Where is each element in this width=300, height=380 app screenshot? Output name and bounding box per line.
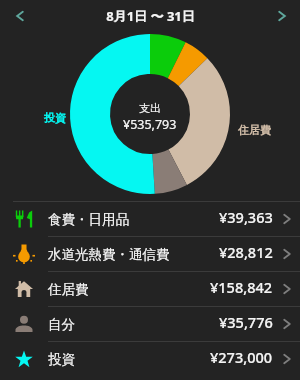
- button[interactable]: 水道光熱費・通信費: [0, 237, 300, 271]
- staticText: ¥35,776: [219, 312, 273, 332]
- button[interactable]: 住居費: [0, 272, 300, 306]
- staticText: ¥273,000: [210, 347, 273, 367]
- staticText: 食費・日用品: [48, 211, 129, 228]
- staticText: 住居費: [48, 281, 89, 298]
- button[interactable]: Next month: [264, 0, 300, 32]
- staticText: ¥28,812: [219, 242, 273, 262]
- button[interactable]: 投資: [0, 342, 300, 376]
- staticText: 支出: [139, 101, 161, 115]
- staticText: 8月1日 〜 31日: [106, 7, 195, 25]
- staticText: ¥39,363: [219, 207, 273, 227]
- staticText: 水道光熱費・通信費: [48, 246, 170, 263]
- staticText: 投資: [48, 351, 75, 368]
- staticText: ¥535,793: [123, 116, 177, 133]
- staticText: ¥158,842: [210, 277, 273, 297]
- button[interactable]: Previous month: [0, 0, 40, 32]
- staticText: 投資: [44, 111, 66, 125]
- button[interactable]: 自分: [0, 307, 300, 341]
- staticText: 住居費: [238, 123, 271, 137]
- staticText: 自分: [48, 316, 75, 333]
- button[interactable]: 食費・日用品: [0, 202, 300, 236]
